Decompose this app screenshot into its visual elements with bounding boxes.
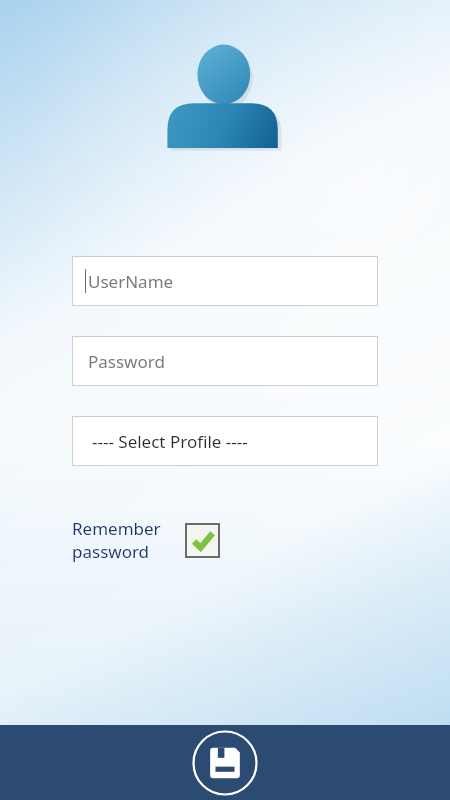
button[interactable]: UserName [72, 256, 378, 306]
button[interactable]: Password [72, 336, 378, 386]
button[interactable]: Remember password [72, 517, 220, 563]
button[interactable]: Save [192, 730, 258, 796]
other: User avatar [165, 40, 285, 155]
staticText: ---- Select Profile ---- [92, 430, 248, 453]
staticText: UserName [88, 270, 174, 293]
staticText: Password [88, 350, 165, 373]
button[interactable]: ---- Select Profile ---- [72, 416, 378, 466]
staticText: Remember password [72, 517, 161, 563]
